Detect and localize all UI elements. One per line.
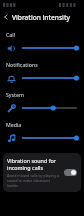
- button[interactable]: Media volume slider: [0, 131, 84, 144]
- button[interactable]: Notifications volume slider: [0, 71, 84, 84]
- staticText: Vibration sound for: [7, 157, 56, 164]
- button[interactable]: System volume slider: [0, 101, 84, 114]
- button[interactable]: Call volume slider: [0, 41, 84, 54]
- staticText: System: [6, 91, 24, 98]
- staticText: sound to make vibrations louder.: [7, 178, 61, 188]
- staticText: Notifications: [6, 61, 38, 68]
- staticText: Call: [6, 31, 16, 38]
- staticText: Avoid missed calls by playing a: [7, 173, 59, 178]
- staticText: Vibration intensity: [12, 13, 70, 22]
- button[interactable]: Back: [0, 10, 12, 24]
- button[interactable]: Vibration sound for: [3, 153, 81, 192]
- button[interactable]: Vibration sound for incoming calls toggl…: [64, 169, 77, 176]
- staticText: Media: [6, 121, 22, 128]
- staticText: incoming calls: [7, 164, 44, 171]
